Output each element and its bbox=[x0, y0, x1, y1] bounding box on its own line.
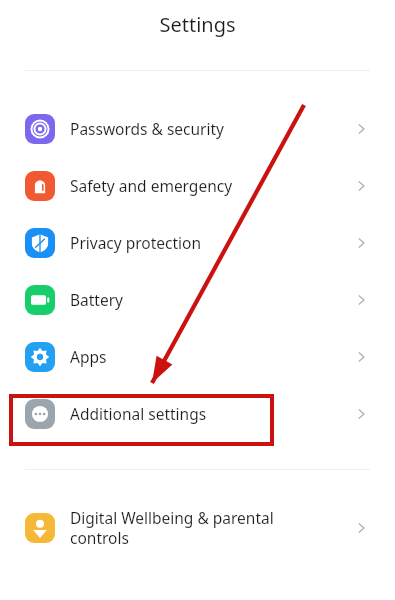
button[interactable]: Digital Wellbeing & parental controls bbox=[0, 500, 395, 556]
other: Open Safety and emergency bbox=[352, 177, 370, 195]
other: Open Battery bbox=[352, 291, 370, 309]
staticText: Safety and emergency bbox=[70, 175, 233, 196]
button[interactable]: Additional settings bbox=[0, 385, 395, 442]
staticText: Digital Wellbeing & parental controls bbox=[70, 507, 274, 549]
staticText: Battery bbox=[70, 289, 124, 310]
staticText: Settings bbox=[159, 11, 236, 38]
button[interactable]: Safety and emergency bbox=[0, 157, 395, 214]
other: Open Apps bbox=[352, 348, 370, 366]
other: Open Additional settings bbox=[352, 405, 370, 423]
other: Open Passwords & security bbox=[352, 120, 370, 138]
staticText: Additional settings bbox=[70, 403, 207, 424]
staticText: Passwords & security bbox=[70, 118, 225, 139]
other: Open Privacy protection bbox=[352, 234, 370, 252]
staticText: Apps bbox=[70, 346, 107, 367]
button[interactable]: Privacy protection bbox=[0, 214, 395, 271]
staticText: Privacy protection bbox=[70, 232, 202, 253]
other: Open Digital Wellbeing & parental contro… bbox=[352, 519, 370, 537]
button[interactable]: Apps bbox=[0, 328, 395, 385]
button[interactable]: Battery bbox=[0, 271, 395, 328]
button[interactable]: Passwords & security bbox=[0, 100, 395, 157]
